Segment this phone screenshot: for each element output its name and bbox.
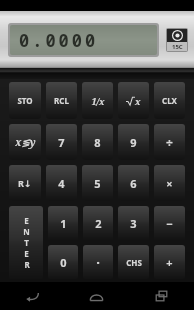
button[interactable]: ÷ [154, 124, 185, 160]
staticText: 6 [130, 176, 137, 191]
button[interactable]: 9 [118, 124, 149, 160]
staticText: E [24, 248, 29, 259]
staticText: STO [17, 95, 33, 106]
staticText: 15C [172, 43, 183, 51]
button[interactable]: · [83, 245, 113, 279]
staticText: 5 [94, 176, 101, 191]
button[interactable]: STO [9, 82, 41, 119]
button[interactable]: Recent apps [129, 282, 194, 310]
staticText: 2 [95, 216, 102, 231]
button[interactable]: 5 [82, 165, 113, 201]
button[interactable]: CHS [118, 245, 149, 279]
staticText: x [135, 95, 141, 107]
staticText: 1/x [91, 95, 105, 107]
button[interactable]: Roll down [9, 165, 41, 201]
staticText: E [24, 215, 29, 226]
staticText: 7 [58, 135, 65, 150]
staticText: 1 [60, 216, 67, 231]
staticText: 9 [130, 135, 137, 150]
staticText: × [166, 176, 173, 191]
staticText: 3 [130, 216, 137, 231]
staticText: 0.0000 [19, 29, 99, 52]
button[interactable]: CLX [154, 82, 185, 119]
button[interactable]: + [154, 245, 185, 279]
staticText: · [96, 253, 100, 271]
button[interactable]: 3 [118, 206, 149, 240]
button[interactable]: Back [0, 282, 64, 310]
button[interactable]: 6 [118, 165, 149, 201]
staticText: R↓ [18, 177, 32, 189]
staticText: + [166, 255, 173, 270]
staticText: x≶y [15, 135, 36, 149]
button[interactable]: × [154, 165, 185, 201]
staticText: ÷ [166, 134, 173, 150]
button[interactable]: E [9, 206, 43, 279]
staticText: − [166, 216, 173, 231]
button[interactable]: 4 [46, 165, 77, 201]
staticText: 4 [58, 176, 65, 191]
button[interactable]: 0 [48, 245, 78, 279]
button[interactable]: 2 [83, 206, 113, 240]
button[interactable]: Square root [118, 82, 149, 119]
staticText: N [23, 226, 30, 237]
button[interactable]: 1/x [82, 82, 113, 119]
staticText: 8 [94, 135, 101, 150]
staticText: T [24, 237, 29, 248]
button[interactable]: 7 [46, 124, 77, 160]
button[interactable]: 8 [82, 124, 113, 160]
staticText: CHS [126, 257, 142, 268]
button[interactable]: RCL [46, 82, 77, 119]
button[interactable]: 1 [48, 206, 78, 240]
staticText: 0 [60, 255, 67, 270]
button[interactable]: Home [64, 282, 129, 310]
staticText: RCL [54, 95, 69, 106]
staticText: R [24, 259, 30, 270]
staticText: CLX [162, 95, 177, 106]
button[interactable]: − [154, 206, 185, 240]
button[interactable]: x≶y [9, 124, 41, 160]
